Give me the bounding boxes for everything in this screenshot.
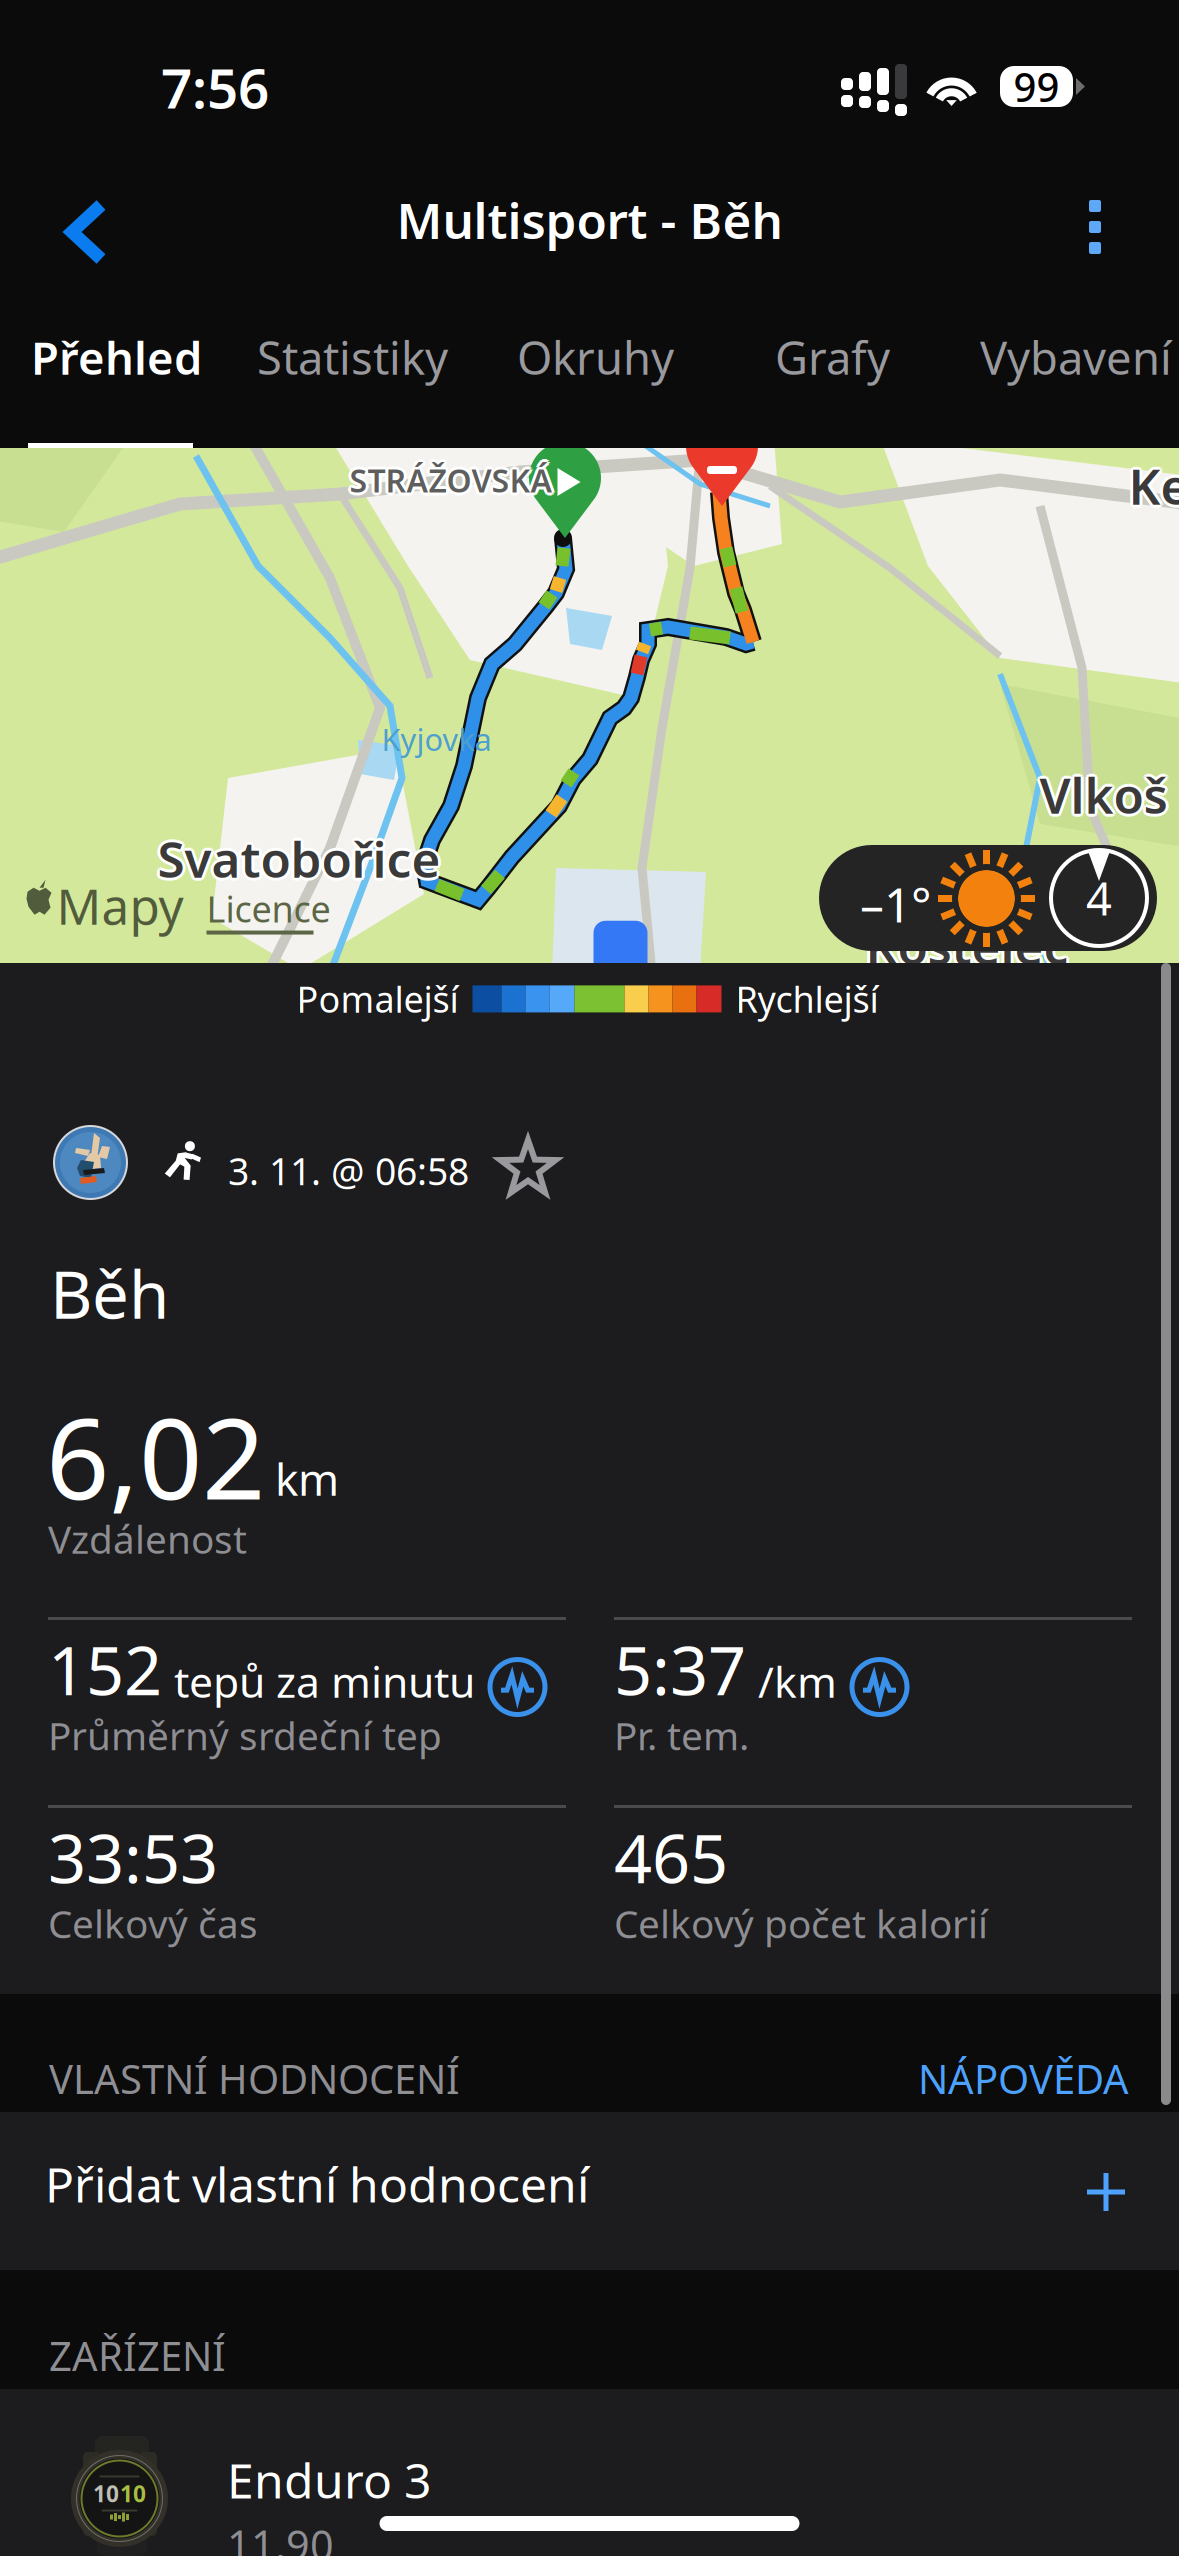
staticText: 6,02 — [46, 1383, 265, 1530]
staticText: Vlkoš — [1042, 762, 1170, 827]
button[interactable]: Vybavení — [980, 327, 1172, 437]
staticText: Okruhy — [517, 327, 674, 387]
staticText: Grafy — [775, 327, 890, 387]
staticText: Svatobořice — [155, 824, 438, 889]
staticText: NÁPOVĚDA — [918, 2052, 1129, 2105]
staticText: 10 — [93, 2478, 119, 2508]
staticText: Rychlejší — [735, 975, 878, 1023]
staticText: 5:37 — [614, 1625, 746, 1713]
staticText: Statistiky — [257, 327, 448, 387]
staticText: Ke — [1130, 451, 1179, 516]
staticText: STRÁŽOVSKÁ — [351, 461, 554, 503]
staticText: 33:53 — [48, 1813, 218, 1901]
staticText: Kostelec — [865, 910, 1068, 975]
staticText: Ke — [1125, 453, 1179, 518]
staticText: Ke — [1128, 456, 1179, 521]
staticText: Svatobořice — [160, 826, 443, 891]
staticText: Svatobořice — [154, 826, 437, 891]
staticText: Pomalejší — [296, 975, 458, 1023]
staticText: Vybavení — [980, 327, 1172, 387]
staticText: Kyjovka — [381, 719, 491, 759]
staticText: Vlkoš — [1041, 764, 1169, 829]
staticText: STRÁŽOVSKÁ — [349, 459, 552, 501]
staticText: Kostelec — [865, 913, 1068, 978]
staticText: 4 — [1086, 868, 1112, 928]
staticText: 10 — [120, 2478, 146, 2508]
staticText: Běh — [50, 1250, 169, 1337]
staticText: 11.90 — [227, 2517, 334, 2556]
staticText: STRÁŽOVSKÁ — [352, 459, 555, 501]
staticText: /km — [758, 1653, 837, 1710]
staticText: ZAŘÍZENÍ — [49, 2329, 226, 2382]
button[interactable]: 10 — [0, 2389, 1179, 2556]
staticText: Pr. tem. — [614, 1709, 749, 1761]
button[interactable]: Favourite — [476, 1120, 580, 1218]
staticText: Licence — [206, 885, 330, 932]
staticText: Svatobořice — [159, 824, 442, 889]
staticText: VLASTNÍ HODNOCENÍ — [49, 2052, 460, 2105]
staticText: Vlkoš — [1041, 760, 1169, 825]
staticText: Průměrný srdeční tep — [48, 1709, 442, 1761]
staticText: 465 — [614, 1813, 728, 1901]
staticText: Vlkoš — [1037, 764, 1165, 829]
staticText: Ke — [1128, 453, 1179, 518]
button[interactable]: Přehled — [31, 327, 202, 437]
staticText: Vlkoš — [1039, 762, 1167, 827]
staticText: Enduro 3 — [227, 2448, 431, 2512]
staticText: 3. 11. @ 06:58 — [228, 1146, 469, 1196]
staticText: –1° — [860, 872, 932, 936]
staticText: Ke — [1128, 450, 1179, 515]
staticText: Svatobořice — [157, 823, 440, 888]
button[interactable]: Back — [40, 175, 133, 289]
staticText: Kostelec — [863, 911, 1066, 976]
staticText: Celkový počet kalorií — [614, 1897, 988, 1949]
staticText: Ke — [1126, 455, 1179, 520]
staticText: STRÁŽOVSKÁ — [347, 461, 550, 503]
staticText: Svatobořice — [157, 829, 440, 894]
staticText: tepů za minutu — [174, 1653, 475, 1710]
staticText: Svatobořice — [157, 826, 440, 891]
button[interactable]: More options — [1052, 160, 1138, 294]
button[interactable]: Grafy — [775, 327, 890, 437]
staticText: Ke — [1130, 455, 1179, 520]
staticText: Kostelec — [868, 913, 1071, 978]
button[interactable]: Statistiky — [257, 327, 448, 437]
staticText: STRÁŽOVSKÁ — [349, 462, 552, 504]
staticText: Vlkoš — [1039, 759, 1167, 824]
staticText: Ke — [1126, 451, 1179, 516]
staticText: Přehled — [31, 327, 202, 387]
button[interactable]: Přidat vlastní hodnocení — [0, 2112, 1179, 2270]
staticText: Přidat vlastní hodnocení — [45, 2152, 589, 2216]
staticText: Kostelec — [862, 913, 1065, 978]
staticText: STRÁŽOVSKÁ — [347, 457, 550, 499]
staticText: STRÁŽOVSKÁ — [346, 459, 549, 501]
staticText: Vlkoš — [1037, 760, 1165, 825]
staticText: Svatobořice — [155, 828, 438, 893]
staticText: 99 — [1013, 60, 1059, 113]
staticText: Kostelec — [865, 916, 1068, 981]
staticText: Multisport - Běh — [396, 187, 782, 252]
staticText: Ke — [1131, 453, 1179, 518]
staticText: Vlkoš — [1036, 762, 1164, 827]
staticText: Vzdálenost — [48, 1513, 247, 1564]
staticText: Mapy — [56, 873, 183, 938]
staticText: STRÁŽOVSKÁ — [349, 456, 552, 498]
staticText: Celkový čas — [48, 1897, 258, 1949]
staticText: 152 — [48, 1625, 162, 1713]
staticText: Kostelec — [867, 911, 1070, 976]
button[interactable]: Okruhy — [517, 327, 674, 437]
staticText: Svatobořice — [159, 828, 442, 893]
staticText: Kostelec — [863, 915, 1066, 980]
staticText: 7:56 — [161, 51, 269, 124]
staticText: STRÁŽOVSKÁ — [351, 457, 554, 499]
staticText: Kostelec — [867, 915, 1070, 980]
button[interactable]: NÁPOVĚDA — [894, 2030, 1153, 2127]
staticText: Vlkoš — [1039, 765, 1167, 830]
staticText: km — [275, 1449, 339, 1508]
